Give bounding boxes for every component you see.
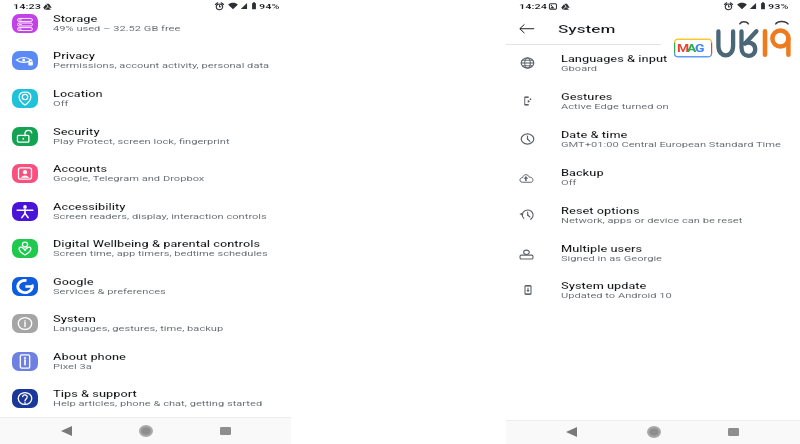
staticText: Security <box>53 127 101 137</box>
staticText: Reset options <box>561 206 641 216</box>
staticText: Accessibility <box>53 202 127 212</box>
button[interactable]: Home <box>641 420 667 444</box>
button[interactable]: Multiple users <box>506 234 800 272</box>
button[interactable]: System <box>0 304 291 342</box>
button[interactable]: Google <box>0 267 291 305</box>
staticText: Play Protect, screen lock, fingerprint <box>53 137 230 146</box>
staticText: G <box>695 41 705 54</box>
staticText: Gboard <box>561 64 599 73</box>
button[interactable]: Gestures <box>506 82 800 120</box>
staticText: System <box>53 314 97 324</box>
staticText: Accounts <box>53 164 107 174</box>
staticText: 93% <box>768 2 789 10</box>
button[interactable]: Accessibility <box>0 192 291 230</box>
staticText: Help articles, phone & chat, getting sta… <box>53 399 263 408</box>
staticText: Screen time, app timers, bedtime schedul… <box>53 249 268 258</box>
button[interactable]: Recents <box>212 417 238 444</box>
staticText: System update <box>561 281 647 291</box>
button[interactable]: Accounts <box>0 154 291 192</box>
button[interactable]: Privacy <box>0 41 291 79</box>
button[interactable]: Recents <box>720 420 746 444</box>
staticText: Location <box>53 89 103 99</box>
staticText: Updated to Android 10 <box>561 291 672 300</box>
button[interactable]: About phone <box>0 342 291 380</box>
button[interactable]: Date & time <box>506 120 800 158</box>
staticText: Signed in as Georgie <box>561 254 663 263</box>
staticText: Off <box>53 99 69 108</box>
staticText: Tips & support <box>53 389 137 399</box>
staticText: Date & time <box>561 130 629 140</box>
staticText: Languages & input <box>561 54 668 64</box>
staticText: Services & preferences <box>53 287 167 296</box>
staticText: Active Edge turned on <box>561 102 669 111</box>
staticText: Off <box>561 178 577 187</box>
staticText: GMT+01:00 Central European Standard Time <box>561 140 782 149</box>
staticText: Permissions, account activity, personal … <box>53 61 269 70</box>
staticText: Digital Wellbeing & parental controls <box>53 239 260 249</box>
staticText: Gestures <box>561 92 614 102</box>
button[interactable]: Home <box>133 417 159 444</box>
button[interactable]: Digital Wellbeing & parental controls <box>0 229 291 267</box>
staticText: Backup <box>561 168 605 178</box>
staticText: System <box>558 22 617 35</box>
button[interactable]: System update <box>506 271 800 309</box>
button[interactable]: Reset options <box>506 196 800 234</box>
staticText: Pixel 3a <box>53 362 92 371</box>
staticText: Languages, gestures, time, backup <box>53 324 224 333</box>
staticText: 14:23 <box>13 2 42 10</box>
staticText: A <box>687 41 697 54</box>
staticText: 49% used – 32.52 GB free <box>53 24 181 33</box>
button[interactable]: Back <box>53 417 79 444</box>
staticText: Storage <box>53 14 98 24</box>
button[interactable]: Back <box>518 21 536 35</box>
button[interactable]: Languages & input <box>506 44 800 82</box>
button[interactable]: Backup <box>506 158 800 196</box>
button[interactable]: Security <box>0 117 291 155</box>
staticText: Network, apps or device can be reset <box>561 216 743 225</box>
staticText: Google <box>53 277 94 287</box>
staticText: Privacy <box>53 51 95 61</box>
button[interactable]: Back <box>558 420 584 444</box>
button[interactable]: Storage <box>0 4 291 42</box>
staticText: 94% <box>259 2 280 10</box>
staticText: Multiple users <box>561 244 642 254</box>
staticText: M <box>677 41 689 54</box>
button[interactable]: Tips & support <box>0 379 291 417</box>
staticText: 14:24 <box>519 2 548 10</box>
staticText: Google, Telegram and Dropbox <box>53 174 205 183</box>
staticText: About phone <box>53 352 127 362</box>
staticText: Screen readers, display, interaction con… <box>53 212 268 221</box>
button[interactable]: Location <box>0 79 291 117</box>
